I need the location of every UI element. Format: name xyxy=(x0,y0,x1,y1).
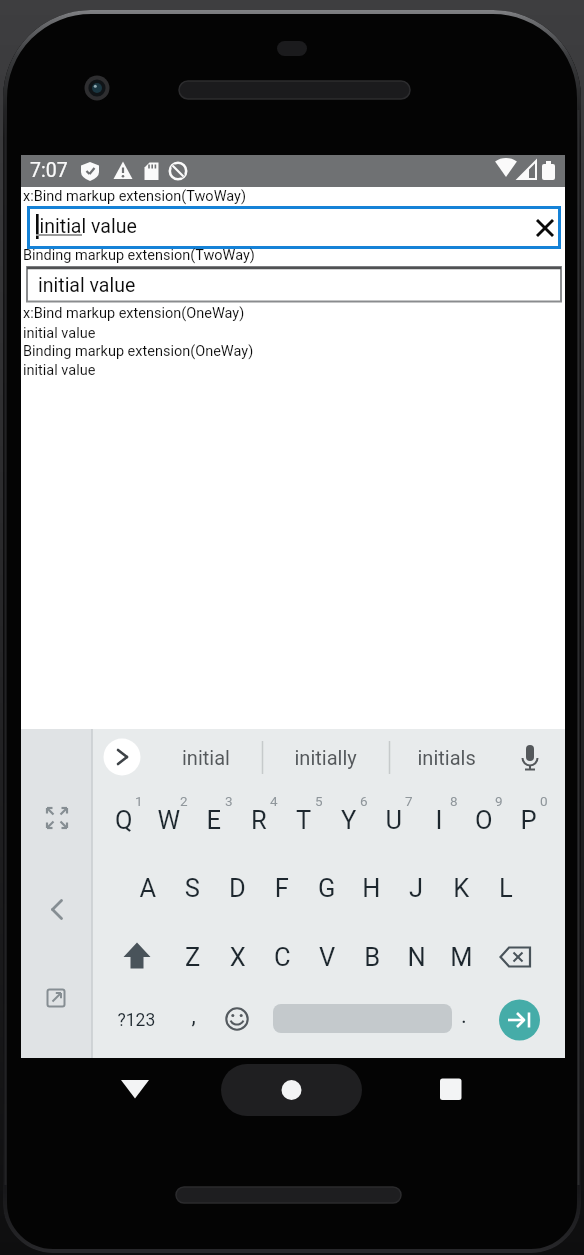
button[interactable] xyxy=(430,1068,472,1110)
button[interactable] xyxy=(27,267,561,302)
button[interactable] xyxy=(530,210,564,244)
button[interactable] xyxy=(499,1000,540,1041)
button[interactable] xyxy=(499,938,539,976)
button[interactable] xyxy=(115,1068,155,1108)
button[interactable] xyxy=(37,978,77,1018)
button[interactable] xyxy=(104,739,140,775)
button[interactable] xyxy=(512,739,548,775)
button[interactable] xyxy=(407,735,497,780)
button[interactable] xyxy=(27,206,561,249)
button[interactable] xyxy=(37,798,77,838)
button[interactable] xyxy=(273,1004,452,1033)
button[interactable] xyxy=(286,735,376,780)
button[interactable] xyxy=(117,938,157,976)
button[interactable] xyxy=(166,735,256,780)
button[interactable] xyxy=(271,1070,312,1111)
button[interactable] xyxy=(115,1001,158,1039)
button[interactable] xyxy=(37,890,77,930)
